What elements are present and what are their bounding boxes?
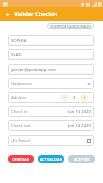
- staticText: DENEGAR: [12, 157, 30, 162]
- button[interactable]: Adultos: [8, 92, 94, 103]
- staticText: ACEPTAR: [74, 157, 90, 162]
- staticText: Jun 14 2020: [68, 123, 91, 129]
- staticText: Validar Checkin: [14, 10, 58, 18]
- button[interactable]: ACTUALIZAR: [38, 155, 64, 163]
- button[interactable]: gerson@pointapp.com: [8, 64, 94, 75]
- button[interactable]: DENEGAR: [8, 155, 34, 163]
- staticText: gerson@pointapp.com: [11, 67, 56, 73]
- staticText: HUESPEDES ADICIONALES: [50, 24, 92, 28]
- button[interactable]: Back: [0, 7, 14, 21]
- staticText: SOPHIA: [11, 38, 27, 44]
- staticText: Habitacion: [11, 81, 33, 87]
- button[interactable]: Check out: [8, 120, 94, 131]
- button[interactable]: ACEPTAR: [68, 155, 95, 163]
- staticText: VLAD: [11, 52, 22, 58]
- button[interactable]: SOPHIA: [8, 35, 94, 46]
- staticText: 2: [73, 95, 76, 101]
- staticText: Jun 13 2020: [68, 109, 91, 115]
- staticText: ACTUALIZAR: [40, 157, 62, 162]
- button[interactable]: VLAD: [8, 49, 94, 60]
- button[interactable]: HUESPEDES ADICIONALES: [47, 23, 94, 29]
- button[interactable]: Habitacion: [8, 78, 94, 89]
- button[interactable]: Es socio checkbox: [87, 139, 91, 143]
- staticText: Adultos: [11, 95, 26, 101]
- button[interactable]: Increase: [81, 94, 88, 101]
- staticText: ¿Es Socio?: [11, 138, 31, 144]
- staticText: Check in: [11, 109, 28, 115]
- staticText: Check out: [11, 123, 31, 129]
- button[interactable]: ¿Es Socio?: [8, 135, 94, 146]
- button[interactable]: Check in: [8, 106, 94, 117]
- button[interactable]: Decrease: [61, 94, 68, 101]
